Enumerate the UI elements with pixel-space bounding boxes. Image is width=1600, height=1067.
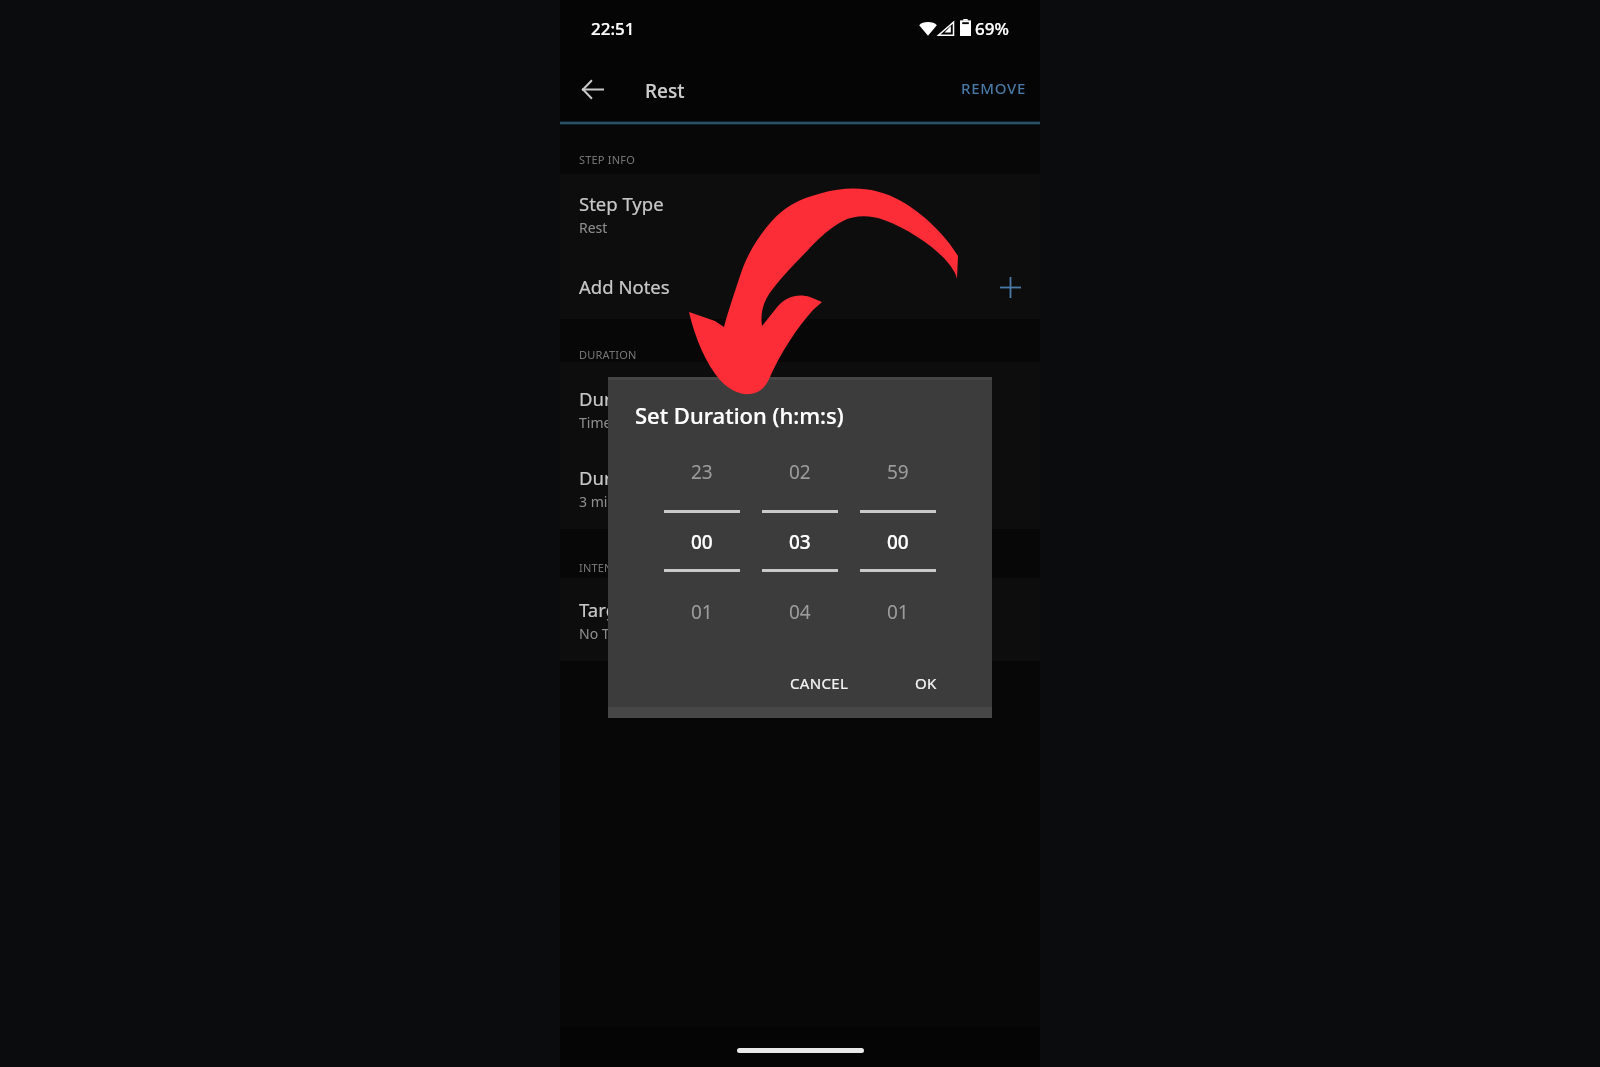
button[interactable]: Target <box>560 578 1040 661</box>
staticText: Duration <box>579 465 656 490</box>
button[interactable]: Back <box>570 67 614 111</box>
button[interactable]: CANCEL <box>779 664 860 702</box>
other: Wi-Fi <box>919 20 937 36</box>
button[interactable]: Step Type <box>560 174 1040 249</box>
staticText: 01 <box>887 599 909 625</box>
staticText: 3 min <box>579 492 617 511</box>
staticText: Time <box>579 413 612 432</box>
staticText: DURATION <box>579 347 637 362</box>
staticText: REMOVE <box>961 78 1026 98</box>
staticText: Step Type <box>579 191 664 216</box>
staticText: 69% <box>975 17 1009 40</box>
staticText: 01 <box>691 599 713 625</box>
staticText: STEP INFO <box>579 152 635 167</box>
staticText: Duration Type <box>579 386 702 411</box>
staticText: INTENSITY <box>579 560 636 575</box>
button[interactable]: REMOVE <box>949 67 1038 109</box>
staticText: 00 <box>887 529 909 555</box>
staticText: No Target <box>579 624 644 643</box>
staticText: Add Notes <box>579 274 670 299</box>
other: Battery 69 percent <box>960 19 971 36</box>
staticText: 00 <box>691 529 713 555</box>
button[interactable]: OK <box>904 664 948 702</box>
button[interactable]: Duration Type <box>560 362 1040 441</box>
other: Mobile signal <box>938 20 954 36</box>
staticText: Rest <box>645 78 685 104</box>
staticText: 03 <box>789 529 811 555</box>
button[interactable]: Add note <box>994 271 1026 303</box>
button[interactable]: Duration <box>560 441 1040 529</box>
staticText: Rest <box>579 218 608 237</box>
staticText: Set Duration (h:m:s) <box>635 400 844 430</box>
staticText: OK <box>915 673 937 693</box>
staticText: Target <box>579 597 635 622</box>
staticText: 23 <box>691 459 713 485</box>
staticText: 02 <box>789 459 811 485</box>
button[interactable]: Add Notes <box>560 249 1040 319</box>
staticText: 22:51 <box>591 17 635 40</box>
staticText: 04 <box>789 599 811 625</box>
staticText: CANCEL <box>790 673 849 693</box>
staticText: 59 <box>887 459 909 485</box>
